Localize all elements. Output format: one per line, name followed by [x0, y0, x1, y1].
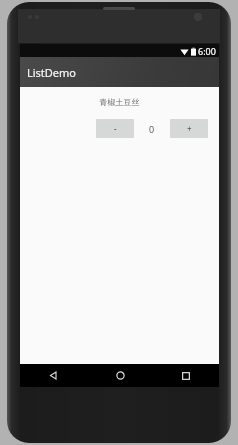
- staticText: 0: [149, 123, 155, 135]
- button[interactable]: Recent apps: [153, 364, 219, 387]
- button[interactable]: Back: [20, 364, 87, 387]
- staticText: -: [114, 123, 117, 134]
- staticText: +: [187, 123, 192, 134]
- staticText: ListDemo: [27, 65, 77, 80]
- staticText: 青椒土豆丝: [20, 97, 219, 107]
- staticText: 6:00: [198, 45, 216, 57]
- button[interactable]: Decrease: [96, 119, 134, 138]
- button[interactable]: Increase: [170, 119, 208, 138]
- button[interactable]: Home: [87, 364, 153, 387]
